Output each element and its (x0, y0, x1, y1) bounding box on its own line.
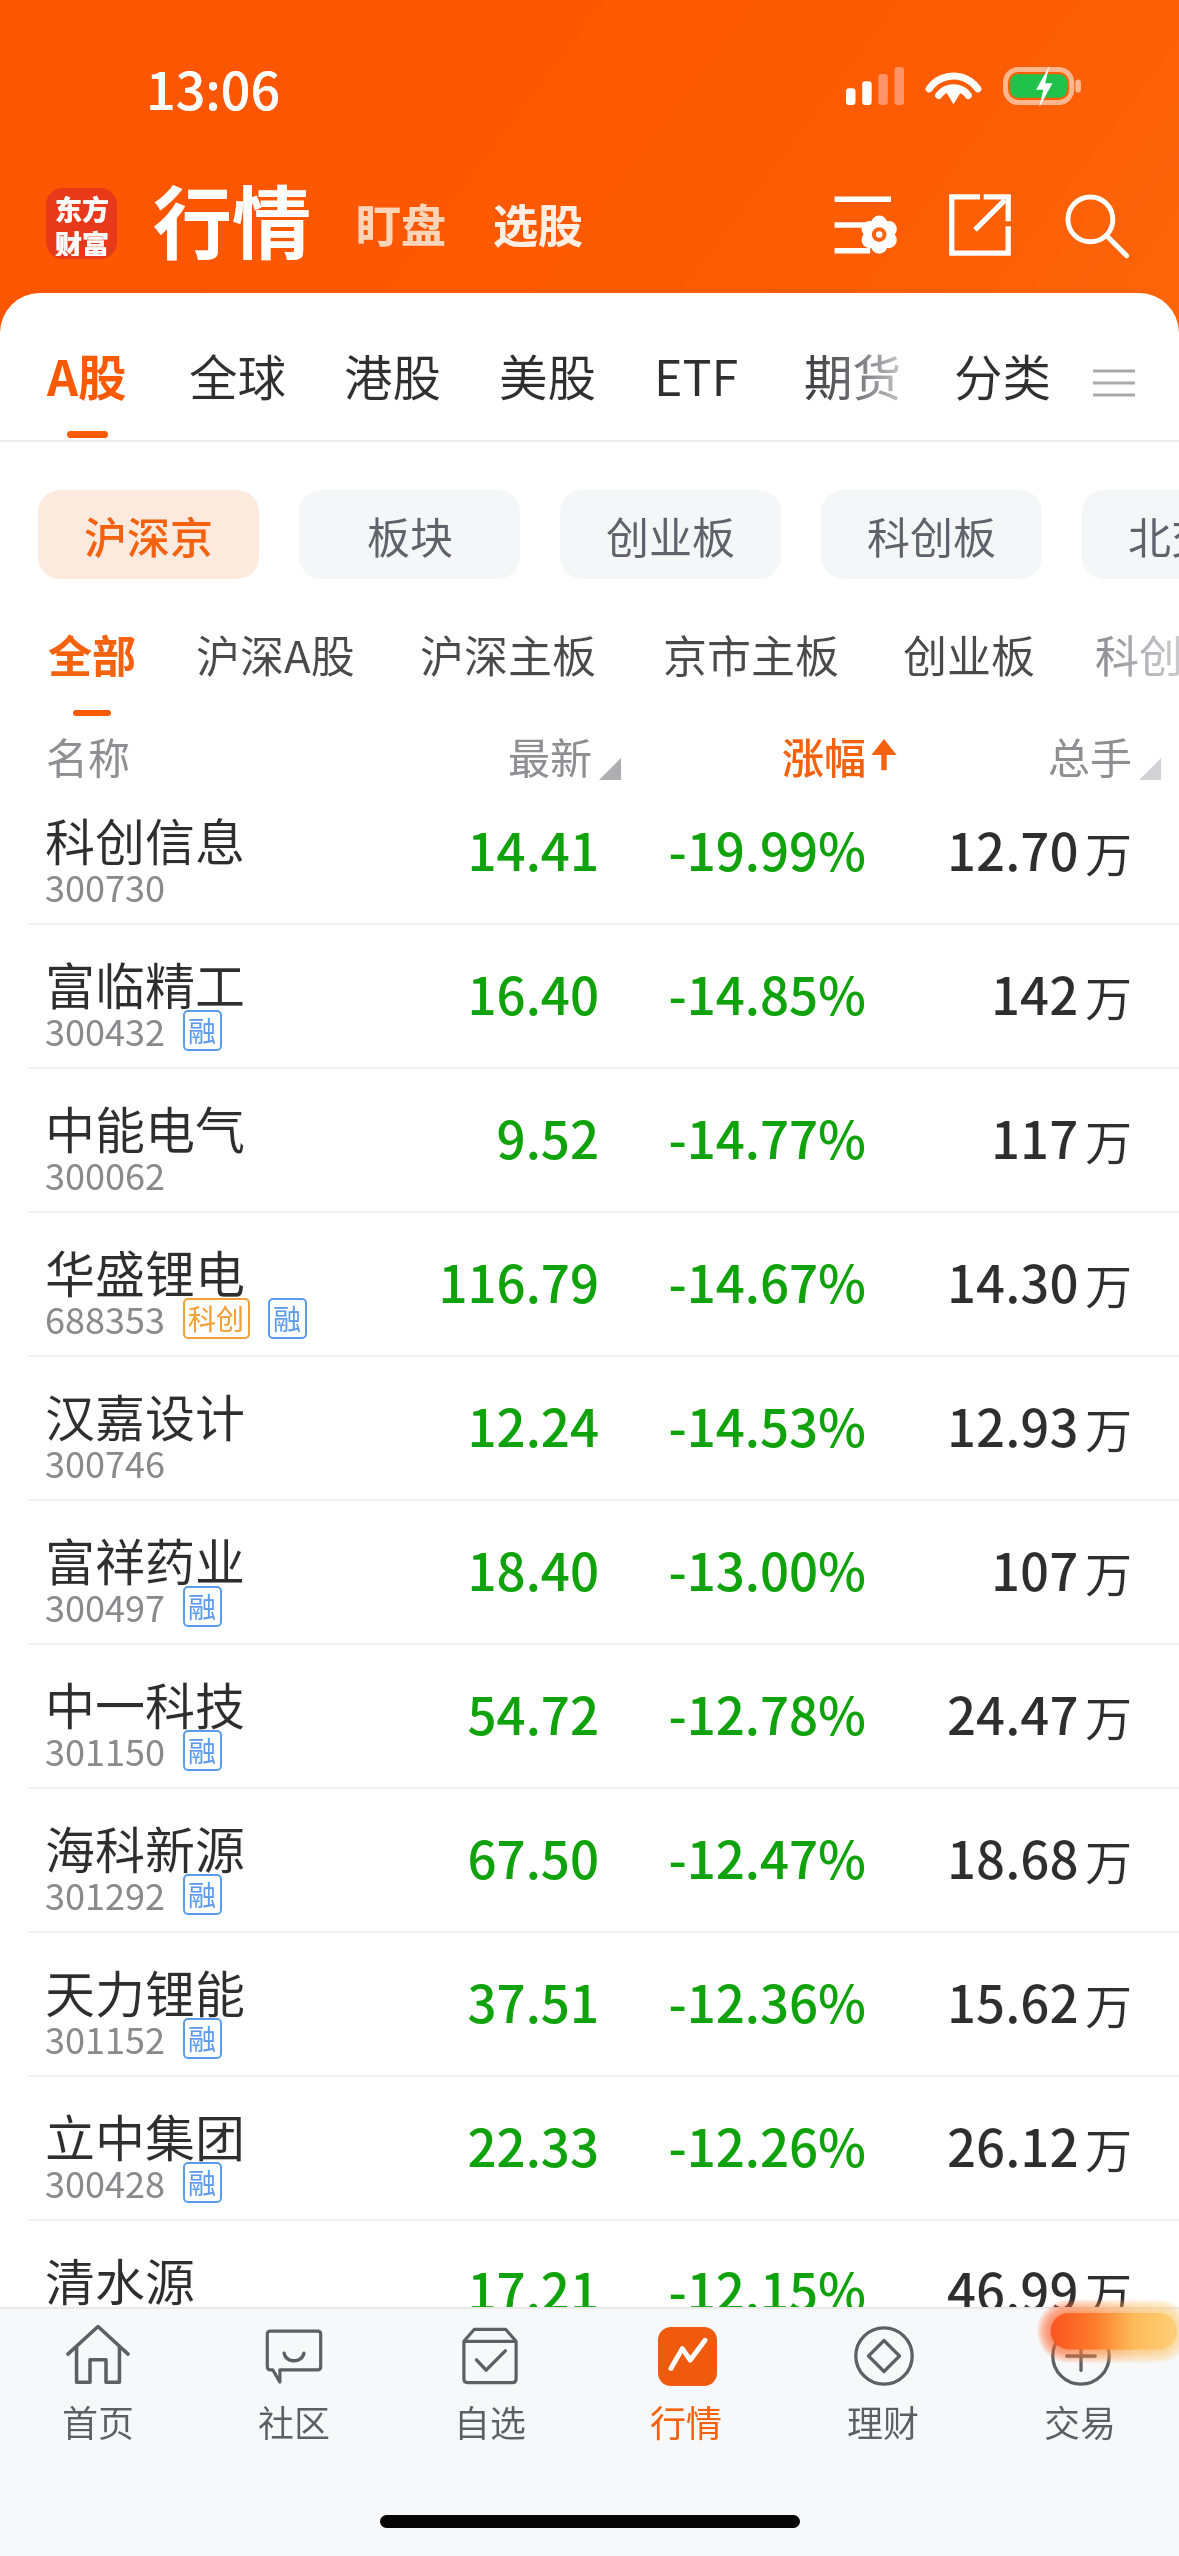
button[interactable]: 天力锂能 (0, 1933, 1179, 2075)
button[interactable]: Quick trade (1043, 2307, 1179, 2359)
staticText: 24.47 (947, 1676, 1079, 1750)
staticText: 116.79 (0, 1244, 599, 1318)
button[interactable]: 中能电气 (0, 1069, 1179, 1211)
staticText: 万 (1085, 817, 1132, 885)
button[interactable]: 港股 (344, 340, 442, 439)
staticText: 万 (1085, 2113, 1132, 2181)
staticText: 选股 (493, 191, 584, 256)
staticText: 14.41 (0, 812, 599, 886)
staticText: 54.72 (0, 1676, 599, 1750)
staticText: 海科新源 (45, 1811, 245, 1883)
staticText: 名称 (46, 725, 131, 784)
button[interactable]: 沪深A股 (196, 622, 355, 686)
staticText: 融 (188, 2162, 217, 2203)
button[interactable]: 美股 (499, 340, 597, 439)
staticText: 财富 (55, 224, 109, 256)
staticText: 67.50 (0, 1820, 599, 1894)
button[interactable]: 富临精工 (0, 925, 1179, 1067)
staticText: 107 (991, 1532, 1079, 1606)
staticText: 37.51 (0, 1964, 599, 2038)
button[interactable]: 京市主板 (663, 622, 839, 686)
button[interactable]: 海科新源 (0, 1789, 1179, 1931)
button[interactable]: 板块 (299, 490, 520, 579)
staticText: 中一科技 (45, 1667, 245, 1739)
button[interactable]: 盯盘 (356, 191, 447, 256)
staticText: 万 (1085, 1825, 1132, 1893)
button[interactable]: ETF (654, 340, 739, 439)
staticText: 26.12 (947, 2108, 1079, 2182)
button[interactable]: 创业板 (560, 490, 781, 579)
staticText: 全球 (189, 340, 287, 410)
button[interactable]: 选股 (493, 191, 584, 256)
button[interactable]: 科创板 (821, 490, 1042, 579)
staticText: 142 (991, 956, 1079, 1030)
button[interactable]: 沪深京 (38, 490, 259, 579)
button[interactable]: 沪深主板 (420, 622, 596, 686)
staticText: -12.26% (0, 2108, 866, 2182)
staticText: -13.00% (0, 1532, 866, 1606)
staticText: 科创板 (1095, 622, 1179, 686)
staticText: 301292 (45, 1868, 165, 1920)
staticText: -12.36% (0, 1964, 866, 2038)
button[interactable]: 科创板 (1095, 622, 1179, 686)
staticText: 300437 (45, 2300, 165, 2352)
staticText: 创业板 (903, 622, 1035, 686)
staticText: 融 (188, 1586, 217, 1627)
button[interactable]: 科创信息 (0, 781, 1179, 923)
button[interactable]: 全部 (48, 622, 136, 686)
button[interactable]: 华盛锂电 (0, 1213, 1179, 1355)
button[interactable]: 社区 (196, 2307, 392, 2467)
staticText: 13:06 (146, 50, 281, 125)
staticText: 18.40 (0, 1532, 599, 1606)
button[interactable]: 期货 (804, 340, 902, 439)
button[interactable]: List settings (824, 185, 904, 265)
staticText: 17.21 (0, 2252, 599, 2326)
button[interactable]: 富祥药业 (0, 1501, 1179, 1643)
button[interactable]: A股 (47, 340, 127, 439)
staticText: 12.93 (947, 1388, 1079, 1462)
staticText: 天力锂能 (45, 1955, 245, 2027)
staticText: 汉嘉设计 (45, 1379, 245, 1451)
staticText: 300497 (45, 1580, 165, 1632)
staticText: 22.33 (0, 2108, 599, 2182)
button[interactable]: 汉嘉设计 (0, 1357, 1179, 1499)
staticText: 东方 (55, 189, 109, 228)
staticText: 12.24 (0, 1388, 599, 1462)
button[interactable]: 创业板 (903, 622, 1035, 686)
staticText: 9.52 (0, 1100, 599, 1174)
button[interactable]: 首页 (0, 2307, 196, 2467)
button[interactable]: 分类 (954, 340, 1052, 439)
button[interactable]: Share (940, 185, 1020, 265)
staticText: 行情 (650, 2395, 723, 2447)
staticText: 15.62 (947, 1964, 1079, 2038)
staticText: 创业板 (606, 504, 735, 566)
button[interactable]: 自选 (392, 2307, 588, 2467)
button[interactable]: 立中集团 (0, 2077, 1179, 2219)
staticText: 总手 (1048, 725, 1133, 784)
button[interactable]: 理财 (785, 2307, 982, 2467)
button[interactable]: 交易 (982, 2307, 1179, 2467)
staticText: 300062 (45, 1148, 165, 1200)
staticText: 社区 (258, 2395, 331, 2447)
staticText: -12.78% (0, 1676, 866, 1750)
staticText: 富祥药业 (45, 1523, 245, 1595)
staticText: 300432 (45, 1004, 165, 1056)
button[interactable]: Search (1057, 186, 1137, 266)
staticText: 首页 (62, 2395, 135, 2447)
staticText: 理财 (847, 2395, 920, 2447)
staticText: 行情 (153, 161, 311, 275)
staticText: 融 (273, 1298, 302, 1339)
staticText: 万 (1085, 1969, 1132, 2037)
button[interactable]: 北交所 (1082, 490, 1179, 579)
button[interactable]: 清水源 (0, 2221, 1179, 2363)
staticText: 科创板 (867, 504, 996, 566)
staticText: -14.53% (0, 1388, 866, 1462)
button[interactable]: 中一科技 (0, 1645, 1179, 1787)
button[interactable]: 行情 (588, 2307, 785, 2467)
staticText: 沪深A股 (196, 622, 355, 686)
button[interactable]: All categories (1086, 355, 1142, 411)
button[interactable]: 全球 (189, 340, 287, 439)
staticText: 万 (1085, 2257, 1132, 2325)
staticText: 清水源 (45, 2243, 195, 2315)
staticText: 板块 (367, 504, 453, 566)
